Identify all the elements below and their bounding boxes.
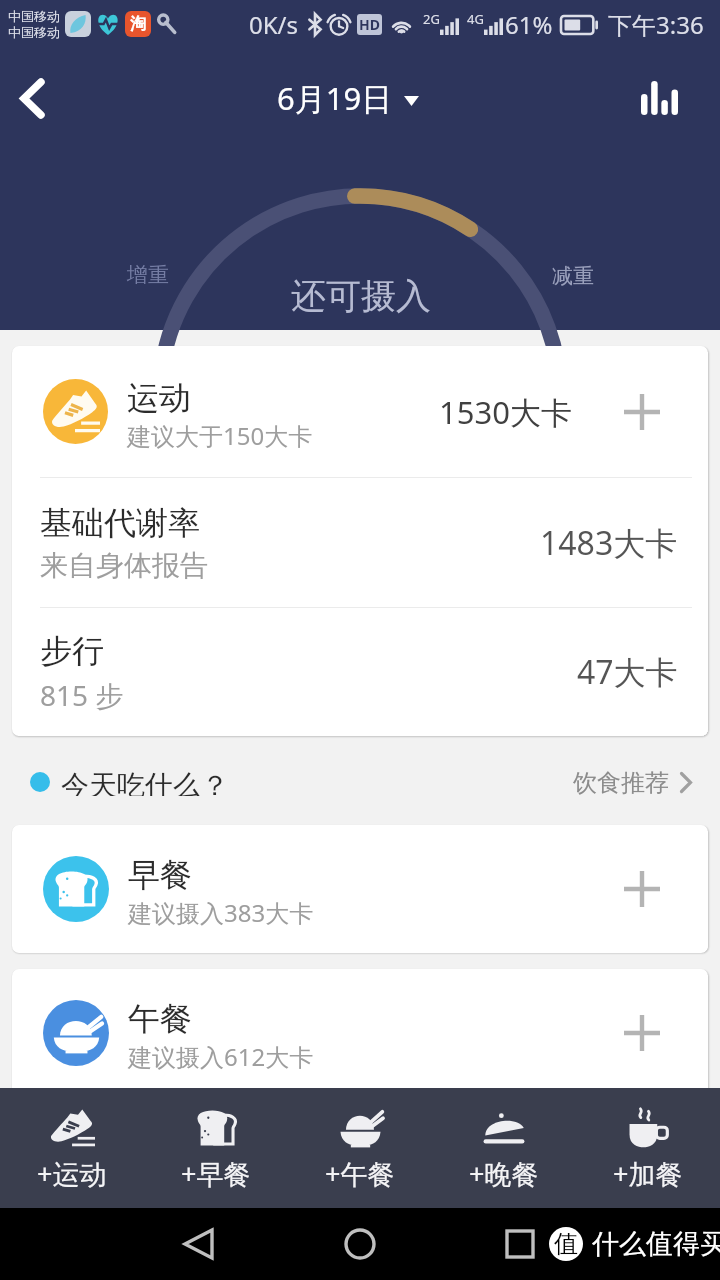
- staticText: 增重: [127, 262, 169, 288]
- button[interactable]: +晚餐: [432, 1088, 576, 1208]
- staticText: 下午3:36: [608, 8, 704, 41]
- button[interactable]: Home: [334, 1218, 386, 1270]
- button[interactable]: 早餐: [12, 825, 708, 953]
- button[interactable]: +加餐: [576, 1088, 720, 1208]
- button[interactable]: 饮食推荐: [573, 768, 692, 796]
- staticText: 基础代谢率: [40, 503, 200, 543]
- staticText: 61%: [505, 8, 553, 41]
- staticText: 减重: [552, 263, 594, 289]
- button[interactable]: +运动: [0, 1088, 144, 1208]
- staticText: 中国移动: [8, 24, 60, 40]
- staticText: 来自身体报告: [40, 548, 208, 583]
- button[interactable]: 步行: [12, 608, 708, 736]
- staticText: +运动: [37, 1155, 107, 1192]
- staticText: 值: [554, 1229, 578, 1259]
- button[interactable]: +午餐: [288, 1088, 432, 1208]
- staticText: 饮食推荐: [573, 768, 669, 796]
- button[interactable]: Back: [172, 1218, 224, 1270]
- staticText: 1483大卡: [540, 521, 678, 565]
- staticText: 建议摄入612大卡: [128, 1040, 314, 1073]
- staticText: 4G: [467, 10, 484, 28]
- button[interactable]: Add: [616, 386, 668, 438]
- button[interactable]: 6月19日: [271, 77, 425, 119]
- staticText: 0K/s: [249, 8, 299, 41]
- button[interactable]: +早餐: [144, 1088, 288, 1208]
- button[interactable]: Statistics: [632, 71, 686, 125]
- staticText: 运动: [127, 378, 191, 418]
- button[interactable]: 基础代谢率: [12, 478, 708, 607]
- staticText: 47大卡: [577, 650, 678, 694]
- staticText: +早餐: [181, 1155, 251, 1192]
- button[interactable]: Add: [616, 863, 668, 915]
- staticText: 还可摄入: [1, 274, 720, 318]
- staticText: +晚餐: [469, 1155, 539, 1192]
- staticText: 1530大卡: [439, 391, 572, 433]
- staticText: +加餐: [613, 1155, 683, 1192]
- staticText: 今天吃什么？: [61, 768, 229, 796]
- staticText: 什么值得买: [592, 1227, 720, 1261]
- staticText: 步行: [40, 631, 104, 671]
- staticText: 午餐: [128, 999, 192, 1039]
- staticText: 建议大于150大卡: [127, 419, 313, 452]
- button[interactable]: Add: [616, 1007, 668, 1059]
- staticText: 2G: [423, 10, 440, 28]
- button[interactable]: Back: [2, 68, 62, 128]
- button[interactable]: 运动: [12, 346, 708, 477]
- staticText: 建议摄入383大卡: [128, 896, 314, 929]
- staticText: 淘: [130, 14, 146, 34]
- button[interactable]: Recents: [494, 1218, 546, 1270]
- staticText: 6月19日: [277, 77, 393, 119]
- button[interactable]: 午餐: [12, 969, 708, 1097]
- staticText: 早餐: [128, 855, 192, 895]
- staticText: HD: [359, 15, 380, 34]
- staticText: 中国移动: [8, 8, 60, 24]
- staticText: 815 步: [40, 676, 124, 714]
- staticText: +午餐: [325, 1155, 395, 1192]
